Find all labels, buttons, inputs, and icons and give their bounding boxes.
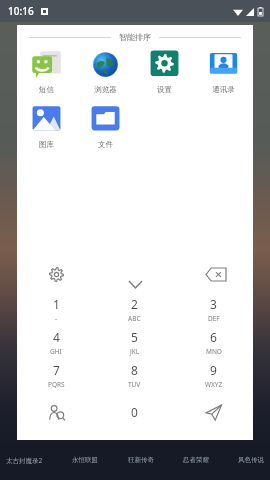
staticText: 风色传说 xyxy=(238,456,264,464)
button[interactable]: 短信 xyxy=(17,46,76,98)
staticText: WXYZ xyxy=(205,380,223,389)
staticText: 智能排序 xyxy=(119,32,151,42)
button[interactable]: 7 xyxy=(17,359,95,392)
staticText: 6 xyxy=(210,329,217,345)
button[interactable]: 8 xyxy=(95,359,174,392)
button[interactable]: Collapse keypad xyxy=(118,275,152,293)
staticText: 10:16 xyxy=(8,4,34,18)
button[interactable]: 9 xyxy=(174,359,253,392)
staticText: 2 xyxy=(131,296,138,312)
button[interactable]: 太古封魔录2 xyxy=(6,456,43,465)
staticText: GHI xyxy=(50,347,62,356)
staticText: 3 xyxy=(210,296,217,312)
staticText: 7 xyxy=(53,362,60,378)
button[interactable]: 1 xyxy=(17,293,95,326)
button[interactable]: 永恒联盟 xyxy=(72,456,98,464)
staticText: 1 xyxy=(53,296,60,312)
button[interactable]: 设置 xyxy=(135,46,194,98)
button[interactable]: Search contacts xyxy=(17,392,95,432)
staticText: 浏览器 xyxy=(94,85,117,94)
staticText: 4 xyxy=(53,329,60,345)
button[interactable]: 忍者荣耀 xyxy=(183,456,209,464)
staticText: 5 xyxy=(131,329,138,345)
button[interactable]: 浏览器 xyxy=(76,46,135,98)
button[interactable]: Backspace xyxy=(201,263,231,285)
staticText: 设置 xyxy=(157,85,172,94)
staticText: 8 xyxy=(131,362,138,378)
button[interactable]: 5 xyxy=(95,326,174,359)
staticText: 9 xyxy=(210,362,217,378)
button[interactable]: 3 xyxy=(174,293,253,326)
button[interactable]: 文件 xyxy=(76,101,135,153)
staticText: 通讯录 xyxy=(212,85,235,94)
button[interactable]: 狂新传奇 xyxy=(128,456,154,464)
staticText: 0 xyxy=(131,404,138,420)
button[interactable]: 风色传说 xyxy=(238,456,264,464)
staticText: 图库 xyxy=(39,140,54,149)
staticText: 狂新传奇 xyxy=(128,456,154,464)
staticText: TUV xyxy=(128,380,141,389)
staticText: 太古封魔录2 xyxy=(6,456,43,465)
staticText: ABC xyxy=(128,314,141,323)
button[interactable]: 图库 xyxy=(17,101,76,153)
button[interactable]: 0 xyxy=(95,392,174,432)
button[interactable]: 2 xyxy=(95,293,174,326)
button[interactable]: Dialer settings xyxy=(43,261,69,287)
staticText: 文件 xyxy=(98,140,113,149)
button[interactable]: 通讯录 xyxy=(194,46,253,98)
staticText: 忍者荣耀 xyxy=(183,456,209,464)
button[interactable]: 6 xyxy=(174,326,253,359)
staticText: DEF xyxy=(208,314,220,323)
staticText: 短信 xyxy=(39,85,54,94)
staticText: PQRS xyxy=(48,380,65,389)
staticText: MNO xyxy=(206,347,222,356)
staticText: - xyxy=(55,314,58,323)
staticText: 永恒联盟 xyxy=(72,456,98,464)
button[interactable]: 4 xyxy=(17,326,95,359)
button[interactable]: Send message xyxy=(174,392,253,432)
staticText: JKL xyxy=(130,347,140,356)
